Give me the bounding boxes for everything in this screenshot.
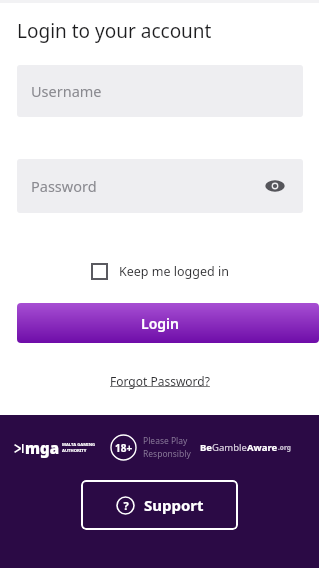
staticText: Forgot Password? [110, 373, 210, 389]
staticText: Password [31, 176, 97, 196]
staticText: Login to your account [17, 18, 212, 44]
staticText: Aware [247, 441, 278, 454]
staticText: 18+ [115, 441, 133, 455]
button[interactable]: Show password [260, 171, 290, 201]
staticText: AUTHORITY [62, 448, 87, 454]
staticText: .org [278, 443, 291, 452]
staticText: Be [200, 441, 212, 454]
button[interactable]: Forgot Password? [104, 371, 216, 391]
staticText: Gamble [212, 441, 247, 454]
button[interactable]: ? [81, 480, 238, 530]
staticText: Support [144, 495, 204, 515]
staticText: Username [31, 81, 102, 101]
staticText: Responsibly [143, 448, 191, 460]
button[interactable]: Keep me logged in [91, 263, 229, 280]
staticText: MALTA GAMING [62, 442, 96, 448]
staticText: Keep me logged in [119, 263, 229, 280]
button[interactable]: Username [17, 65, 303, 117]
staticText: ? [123, 498, 129, 513]
button[interactable]: Login [17, 303, 319, 343]
staticText: Please Play [143, 435, 188, 447]
staticText: mga [25, 438, 59, 458]
staticText: Login [141, 314, 179, 333]
button[interactable]: Password [17, 159, 303, 213]
